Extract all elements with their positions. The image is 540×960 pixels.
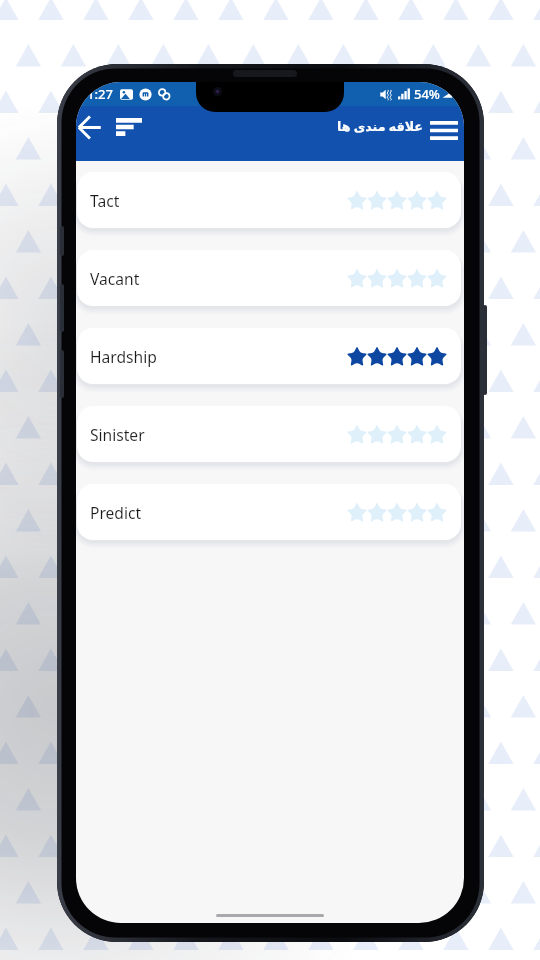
staticText: 54% xyxy=(414,85,440,103)
staticText: علاقه مندی ها xyxy=(337,118,423,135)
staticText: Hardship xyxy=(90,346,157,367)
button[interactable]: Sinister xyxy=(77,406,461,462)
button[interactable]: Tact xyxy=(77,172,461,228)
button[interactable]: Back xyxy=(76,110,107,145)
button[interactable]: Hardship xyxy=(77,328,461,384)
button[interactable]: Menu xyxy=(424,113,464,147)
staticText: Tact xyxy=(90,190,120,211)
staticText: Vacant xyxy=(90,268,140,289)
button[interactable]: Sort xyxy=(108,111,150,143)
staticText: Sinister xyxy=(90,424,145,445)
staticText: 1:27 xyxy=(87,85,113,103)
button[interactable]: Vacant xyxy=(77,250,461,306)
button[interactable]: Predict xyxy=(77,484,461,540)
staticText: Predict xyxy=(90,502,142,523)
